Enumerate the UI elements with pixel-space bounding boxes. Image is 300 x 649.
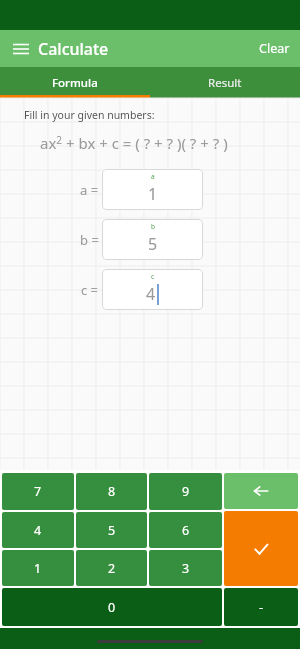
staticText: b = (80, 231, 99, 249)
button[interactable]: - (224, 588, 298, 626)
button[interactable]: Clear (249, 34, 300, 63)
staticText: 6 (182, 522, 190, 539)
staticText: 4 (34, 522, 42, 539)
staticText: Clear (259, 40, 290, 57)
staticText: 3 (182, 560, 190, 577)
button[interactable]: Backspace (224, 473, 298, 509)
staticText: 9 (182, 483, 190, 500)
staticText: 4 (146, 283, 156, 305)
staticText: Calculate (38, 38, 109, 60)
staticText: c (151, 272, 155, 281)
staticText: b (151, 222, 155, 231)
staticText: Fill in your given numbers: (24, 108, 155, 122)
button[interactable]: 4 (2, 512, 74, 548)
staticText: - (259, 599, 264, 616)
staticText: 1 (34, 560, 42, 577)
staticText: Result (208, 75, 242, 91)
staticText: 7 (34, 483, 42, 500)
button[interactable]: 0 (2, 588, 222, 626)
button[interactable]: a (102, 169, 203, 210)
staticText: Formula (52, 75, 98, 91)
button[interactable]: c (102, 269, 203, 310)
staticText: a (151, 172, 155, 181)
staticText: 1 (148, 183, 158, 205)
button[interactable]: 3 (149, 550, 222, 586)
button[interactable]: Formula (0, 67, 150, 98)
button[interactable]: 1 (2, 550, 74, 586)
button[interactable]: b (102, 219, 203, 260)
staticText: a = (80, 181, 99, 199)
staticText: c = (81, 281, 99, 299)
staticText: 2 (108, 560, 116, 577)
button[interactable]: 8 (76, 473, 147, 510)
staticText: 5 (148, 233, 158, 255)
button[interactable]: 9 (149, 473, 222, 510)
staticText: 5 (108, 522, 116, 539)
button[interactable]: 2 (76, 550, 147, 586)
button[interactable]: Calculate result (224, 511, 298, 586)
button[interactable]: 5 (76, 512, 147, 548)
staticText: 8 (108, 483, 116, 500)
button[interactable]: Open navigation menu (8, 36, 34, 62)
button[interactable]: 7 (2, 473, 74, 510)
button[interactable]: 6 (149, 512, 222, 548)
staticText: 0 (108, 599, 116, 616)
staticText: ax2 + bx + c = ( ? + ? )( ? + ? ) (40, 133, 228, 153)
button[interactable]: Result (150, 67, 300, 98)
